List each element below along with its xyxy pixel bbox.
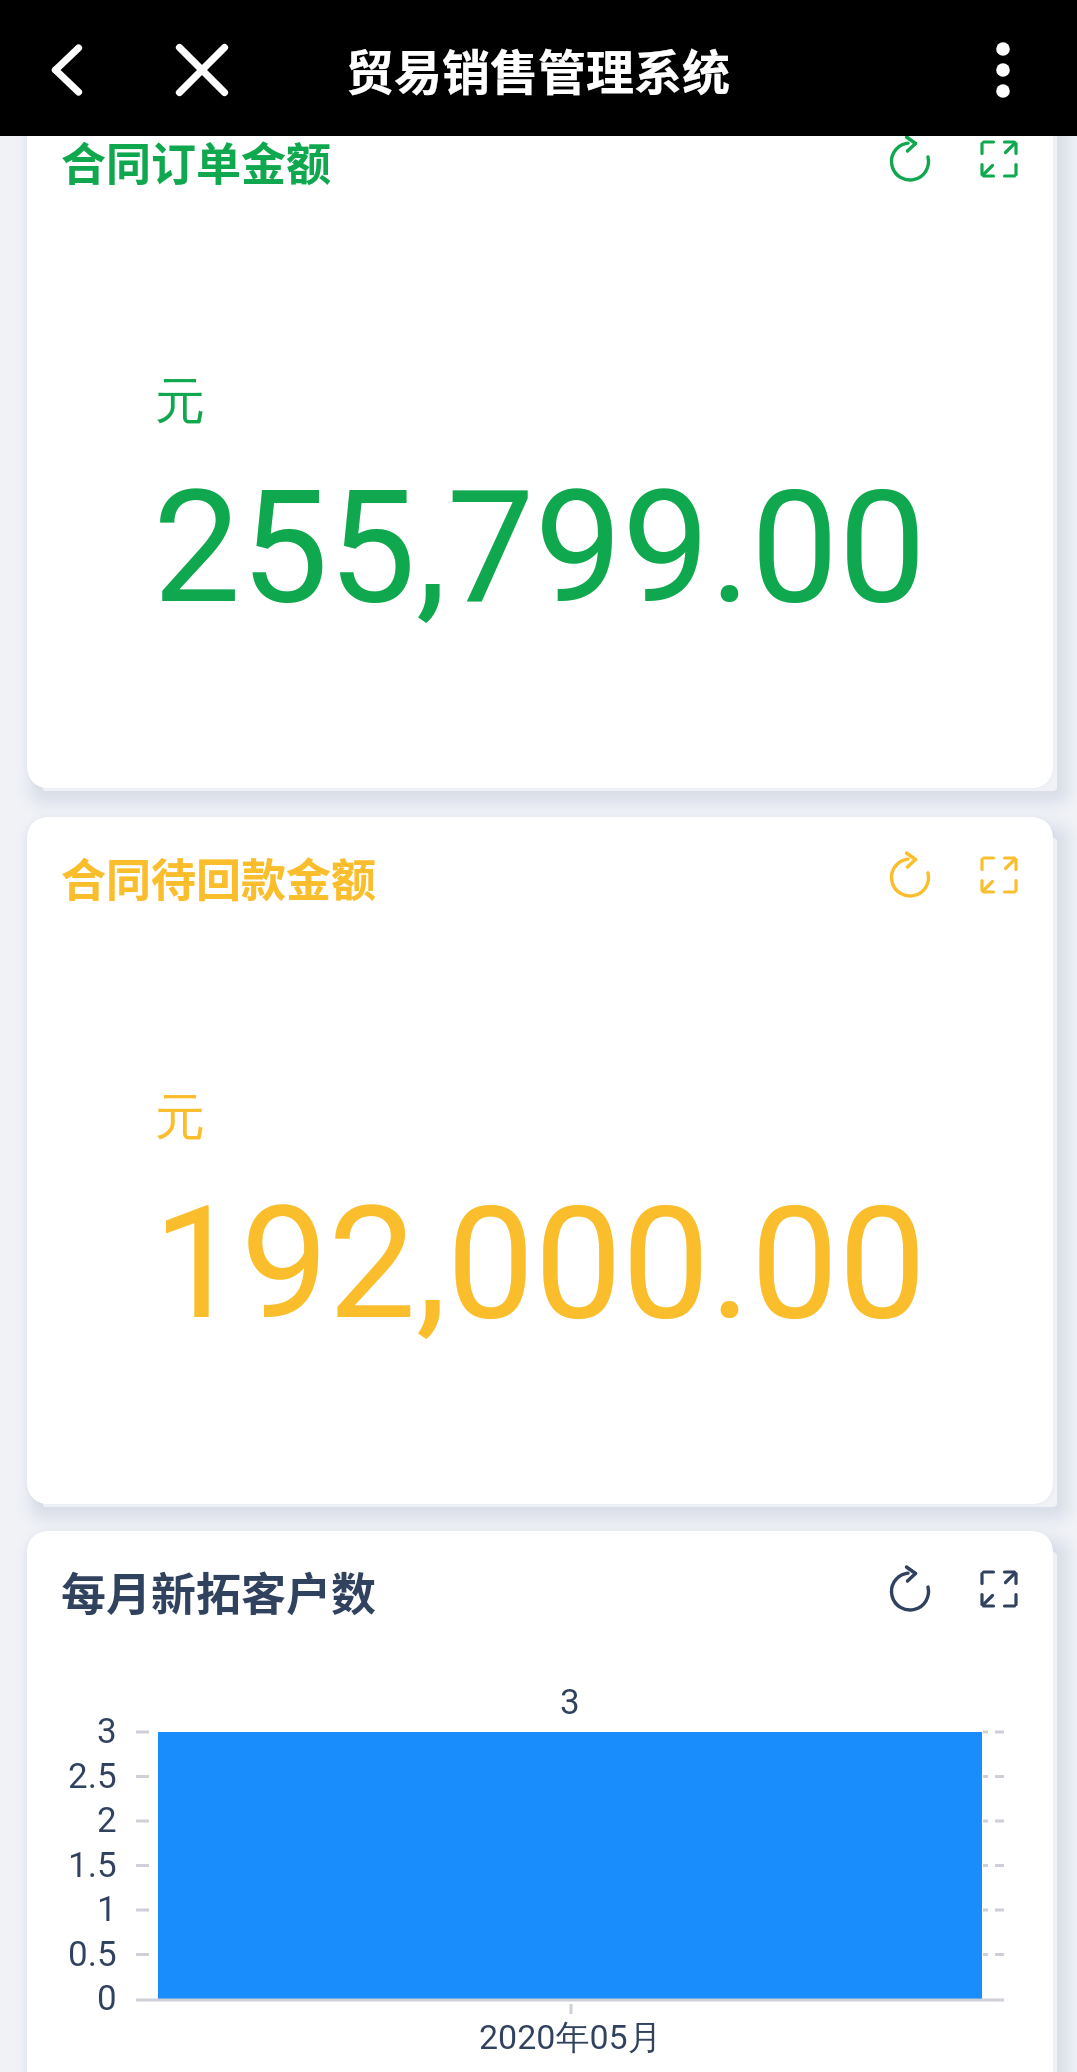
staticText: 贸易销售管理系统 [346, 34, 731, 104]
button[interactable]: Fullscreen [963, 839, 1035, 911]
button[interactable]: Fullscreen [963, 123, 1035, 195]
staticText: 元 [155, 1086, 205, 1149]
staticText: 2.5 [68, 1756, 117, 1797]
staticText: 每月新拓客户数 [61, 1559, 377, 1624]
staticText: 3 [560, 1682, 580, 1723]
staticText: 192,000.00 [153, 1172, 927, 1355]
button[interactable]: Refresh [874, 841, 946, 913]
staticText: 255,799.00 [153, 456, 927, 639]
staticText: 3 [97, 1711, 117, 1752]
staticText: 0 [97, 1978, 117, 2019]
button[interactable]: More options [963, 30, 1043, 110]
button[interactable]: Fullscreen [963, 1553, 1035, 1625]
staticText: 2 [97, 1800, 117, 1841]
staticText: 合同待回款金额 [61, 845, 377, 910]
staticText: 1.5 [68, 1845, 117, 1886]
staticText: 2020年05月 [479, 2016, 662, 2059]
button[interactable]: Close [162, 30, 242, 110]
staticText: 0.5 [68, 1934, 117, 1975]
button[interactable]: Refresh [874, 1555, 946, 1627]
staticText: 元 [155, 370, 205, 433]
button[interactable]: Back [27, 30, 107, 110]
staticText: 合同订单金额 [61, 129, 332, 194]
button[interactable]: Refresh [874, 125, 946, 197]
staticText: 1 [97, 1889, 117, 1930]
